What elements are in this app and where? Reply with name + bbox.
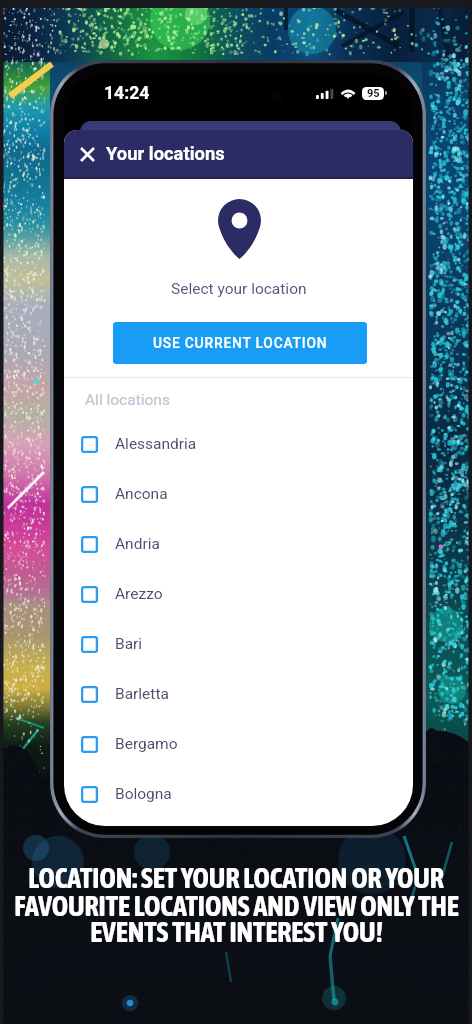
staticText: FAVOURITE LOCATIONS AND VIEW ONLY THE xyxy=(14,890,459,922)
button[interactable]: Barletta xyxy=(64,669,413,719)
staticText: USE CURRENT LOCATION xyxy=(153,335,328,351)
button[interactable]: Andria xyxy=(64,519,413,569)
staticText: Your locations xyxy=(106,143,225,165)
button[interactable]: Bergamo xyxy=(64,719,413,769)
button[interactable]: Bari xyxy=(64,619,413,669)
button[interactable]: Arezzo xyxy=(64,569,413,619)
staticText: Andria xyxy=(115,535,160,553)
staticText: All locations xyxy=(85,391,170,409)
button[interactable]: Close xyxy=(64,130,413,177)
staticText: Barletta xyxy=(115,685,169,703)
button[interactable]: Close xyxy=(79,146,95,162)
staticText: Arezzo xyxy=(115,585,163,603)
staticText: Bari xyxy=(115,635,143,653)
button[interactable]: Alessandria xyxy=(64,419,413,469)
button[interactable]: Ancona xyxy=(64,469,413,519)
staticText: 14:24 xyxy=(104,83,150,104)
staticText: Ancona xyxy=(115,485,168,503)
staticText: EVENTS THAT INTEREST YOU! xyxy=(90,916,383,948)
staticText: Alessandria xyxy=(115,435,197,453)
button[interactable]: Bologna xyxy=(64,769,413,819)
staticText: Bologna xyxy=(115,785,172,803)
button[interactable]: USE CURRENT LOCATION xyxy=(113,322,367,364)
staticText: 95 xyxy=(367,87,380,100)
staticText: LOCATION: SET YOUR LOCATION OR YOUR xyxy=(28,862,444,894)
staticText: Select your location xyxy=(171,280,307,298)
staticText: Bergamo xyxy=(115,735,178,753)
